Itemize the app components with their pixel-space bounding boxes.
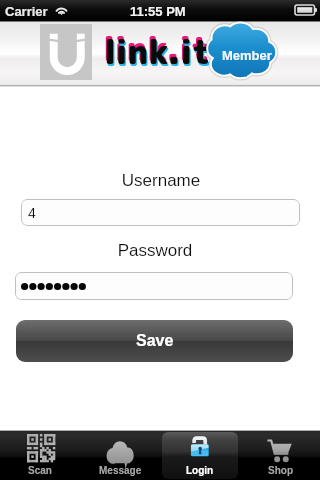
staticText: 4 — [28, 205, 36, 221]
staticText: Password — [0, 241, 315, 260]
button[interactable]: 4 — [21, 199, 300, 226]
staticText: Member — [222, 48, 272, 63]
staticText: link.it — [105, 31, 212, 77]
staticText: Scan — [28, 465, 52, 476]
staticText: 11:55 PM — [130, 4, 186, 19]
staticText: Save — [136, 332, 174, 350]
staticText: link.it — [103, 26, 210, 72]
button[interactable]: Message — [80, 430, 160, 479]
button[interactable]: Save — [16, 320, 293, 362]
other: Login — [190, 436, 211, 457]
other: Shop — [266, 437, 292, 463]
staticText: link.it — [104, 29, 211, 75]
staticText: Message — [99, 465, 142, 476]
button[interactable]: Login — [160, 430, 240, 479]
other: Scan — [27, 434, 55, 462]
staticText: Shop — [268, 465, 293, 476]
staticText: Username — [1, 171, 320, 190]
staticText: Login — [186, 465, 214, 476]
button[interactable]: Scan — [0, 430, 80, 479]
button[interactable]: Shop — [240, 430, 320, 479]
other: Message — [106, 438, 134, 466]
staticText: Carrier — [5, 4, 48, 19]
button[interactable] — [15, 272, 293, 300]
